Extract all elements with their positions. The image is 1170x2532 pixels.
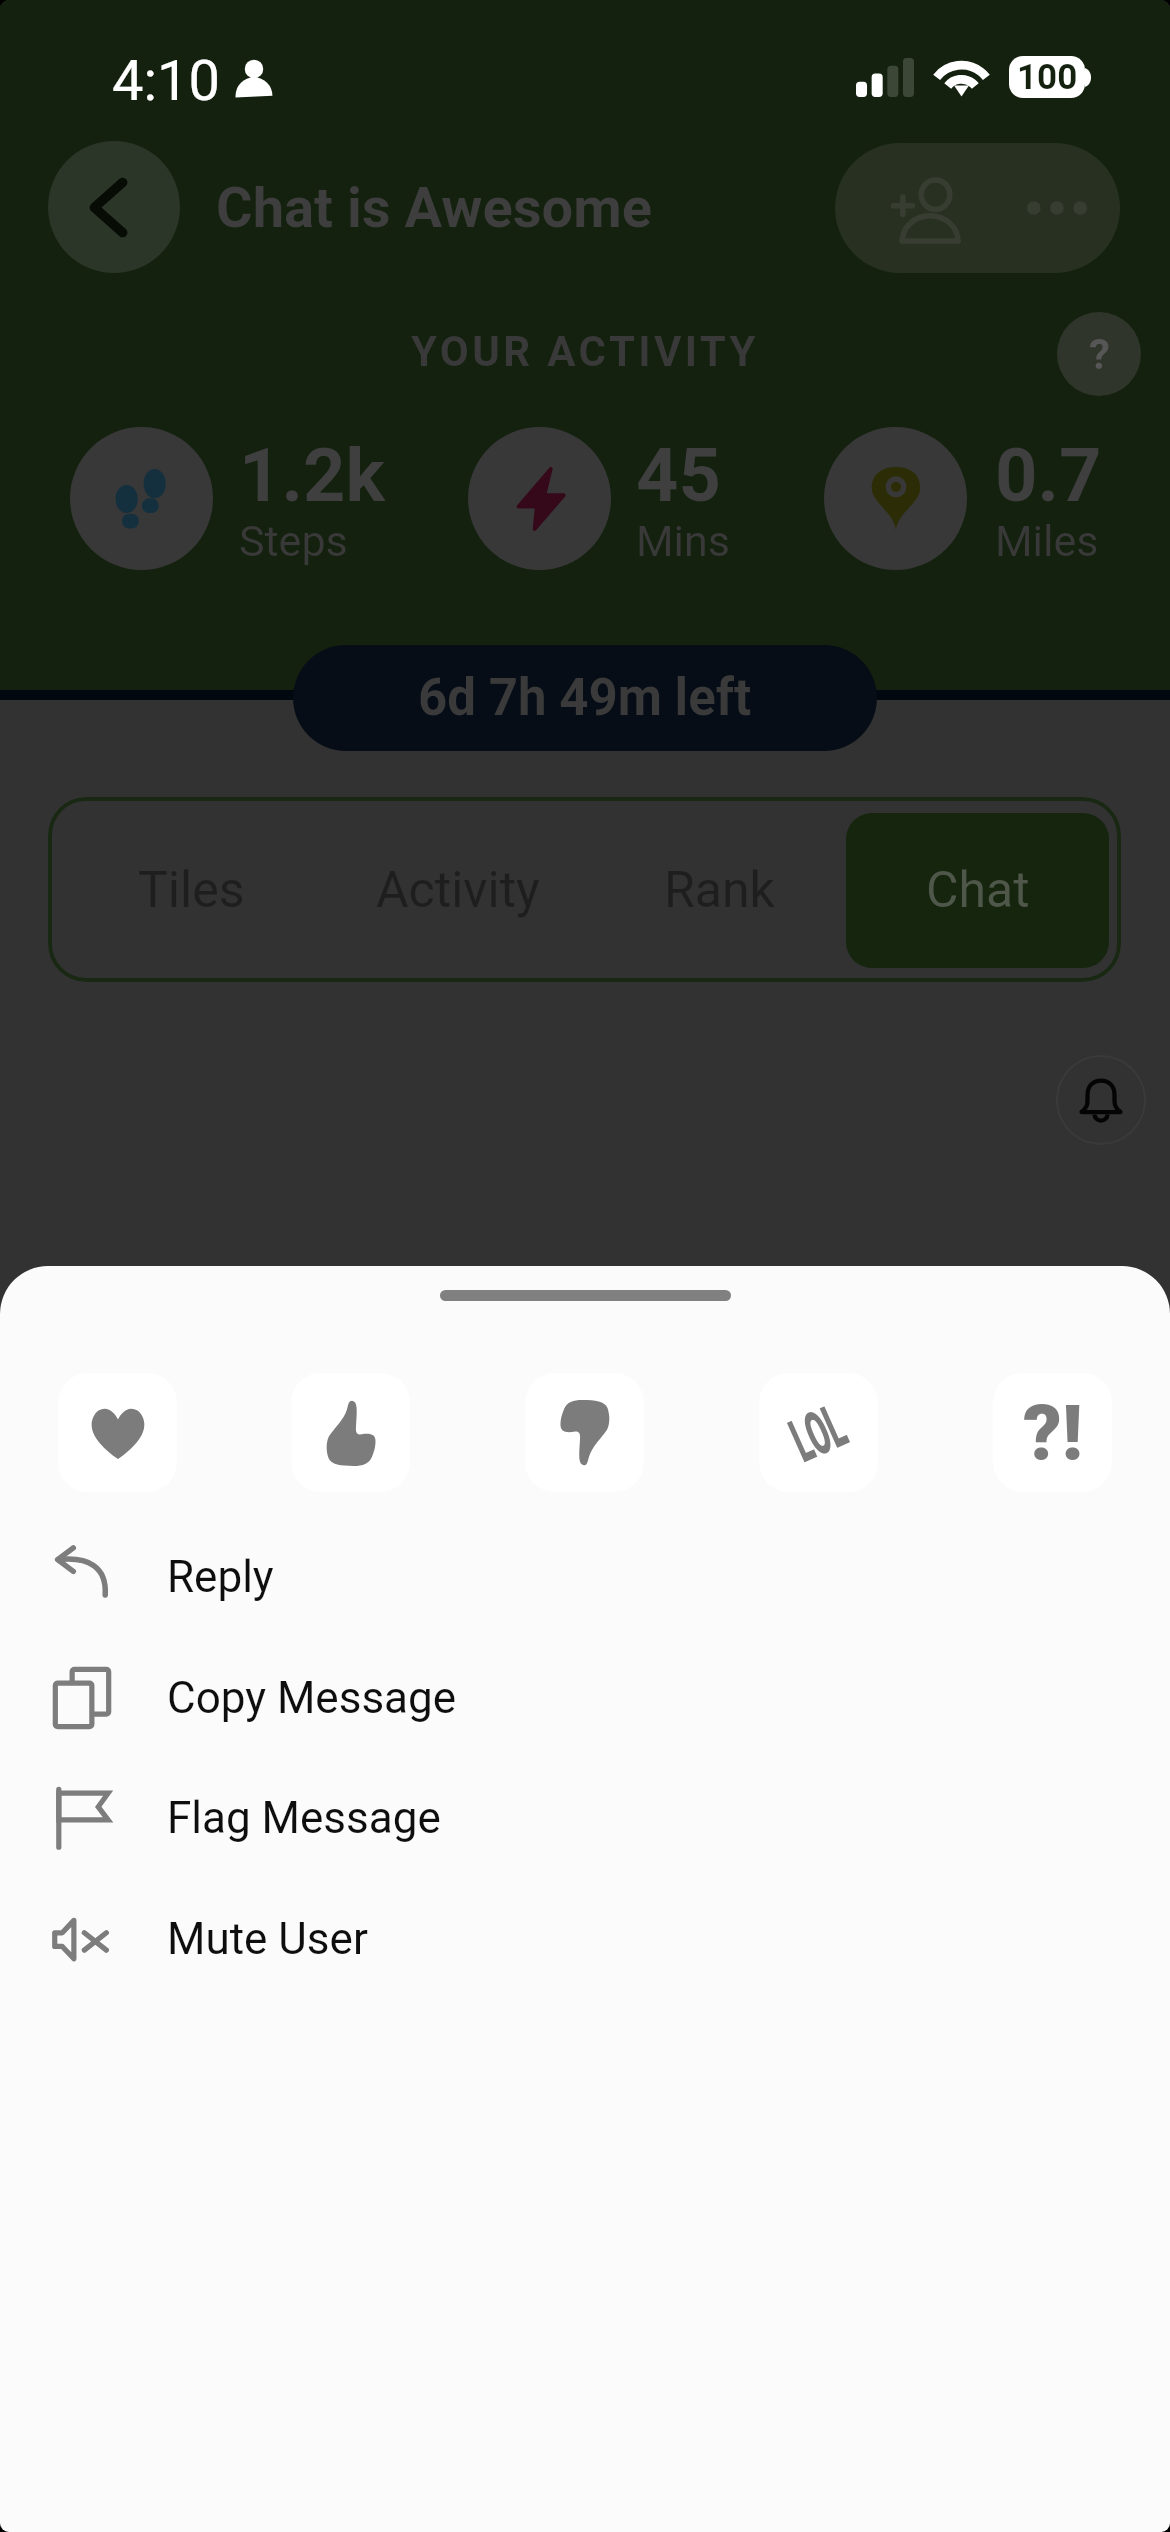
staticText: 100 — [1017, 57, 1078, 98]
staticText: Chat — [926, 861, 1030, 920]
button[interactable]: LOL — [759, 1373, 878, 1492]
staticText: 0.7 — [995, 432, 1102, 519]
staticText: Rank — [664, 861, 775, 920]
button[interactable]: Mute User — [0, 1879, 1170, 1999]
button[interactable] — [824, 427, 967, 570]
staticText: Mute User — [167, 1913, 368, 1965]
staticText: Chat is Awesome — [216, 175, 652, 241]
button[interactable]: Tiles — [60, 813, 322, 968]
button[interactable]: Activity — [322, 813, 594, 968]
staticText: Mins — [636, 516, 730, 566]
staticText: YOUR ACTIVITY — [0, 327, 1170, 376]
button[interactable]: Like — [291, 1373, 410, 1492]
button[interactable]: Rank — [594, 813, 844, 968]
staticText: Reply — [167, 1551, 274, 1603]
staticText: 1.2k — [239, 432, 385, 519]
staticText: 45 — [636, 432, 721, 519]
staticText: Activity — [376, 861, 540, 920]
staticText: Copy Message — [167, 1672, 457, 1724]
button[interactable]: Love — [58, 1373, 177, 1492]
staticText: ?! — [1023, 1388, 1083, 1477]
staticText: Tiles — [138, 861, 245, 920]
button[interactable]: Notifications — [1056, 1055, 1146, 1145]
staticText: 6d 7h 49m left — [418, 668, 752, 728]
button[interactable]: Flag Message — [0, 1758, 1170, 1878]
button[interactable] — [70, 427, 213, 570]
button[interactable]: Dislike — [525, 1373, 644, 1492]
button[interactable]: ?! — [993, 1373, 1112, 1492]
button[interactable]: Chat — [846, 813, 1109, 968]
button[interactable]: Back — [48, 141, 180, 273]
staticText: 4:10 — [112, 48, 220, 114]
staticText: ? — [1089, 330, 1110, 379]
button[interactable]: Help — [1057, 312, 1141, 396]
button[interactable]: Add people — [845, 143, 975, 273]
staticText: LOL — [780, 1390, 857, 1476]
staticText: Miles — [995, 516, 1099, 566]
button[interactable]: Reply — [0, 1517, 1170, 1637]
button[interactable]: 6d 7h 49m left — [293, 645, 877, 751]
button[interactable]: Copy Message — [0, 1638, 1170, 1758]
staticText: Steps — [239, 516, 348, 566]
button[interactable]: More options — [990, 143, 1120, 273]
staticText: Flag Message — [167, 1792, 441, 1844]
button[interactable] — [468, 427, 611, 570]
